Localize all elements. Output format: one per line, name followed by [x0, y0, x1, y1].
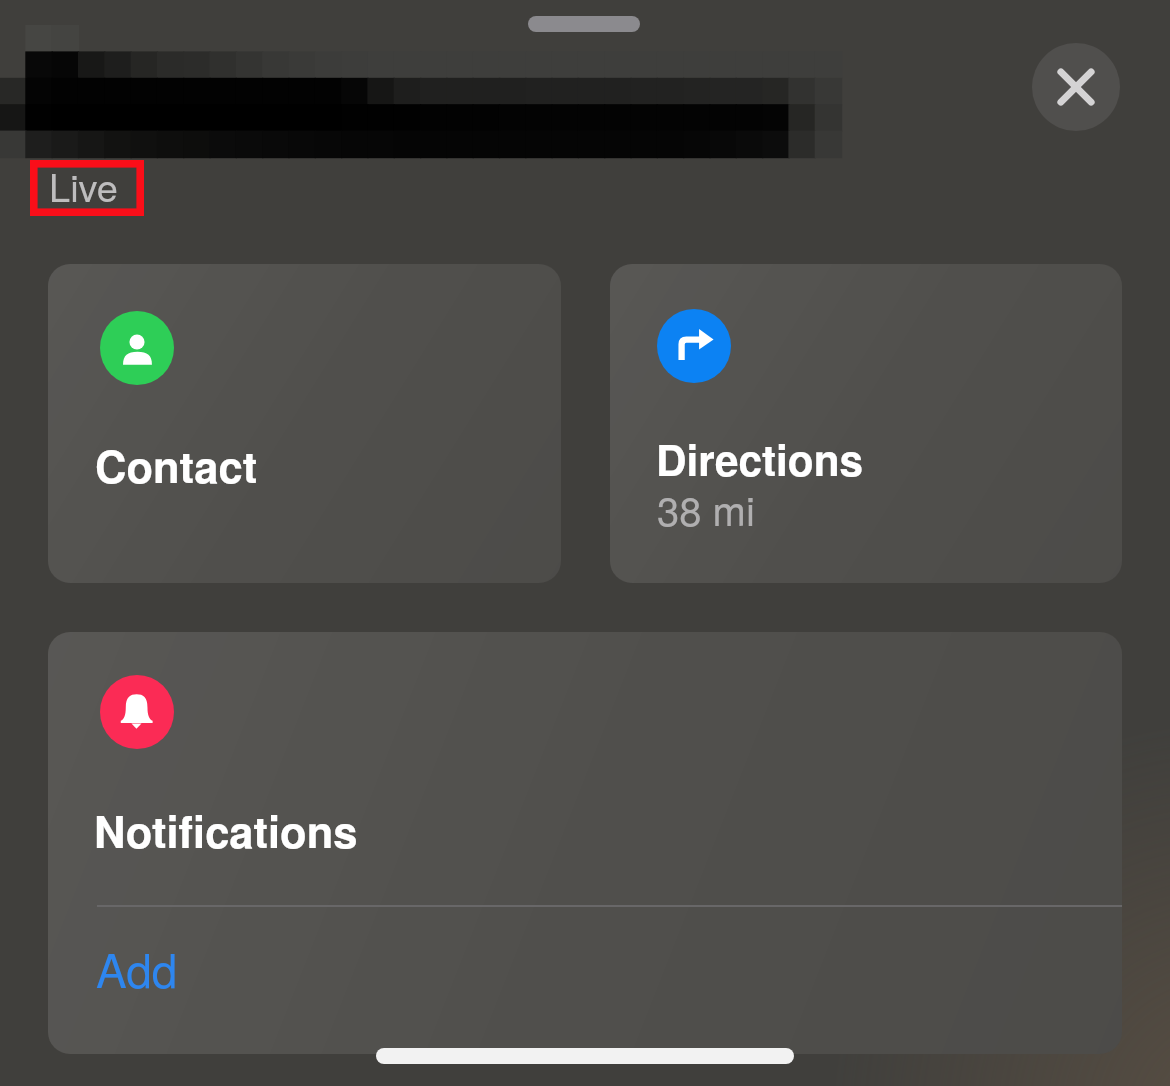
staticText: Notifications	[94, 799, 358, 861]
button[interactable]: Contact	[48, 264, 561, 583]
staticText: Contact	[95, 434, 258, 496]
button[interactable]: Add	[48, 907, 1122, 1054]
staticText: Live	[49, 158, 118, 212]
staticText: Add	[96, 935, 178, 1001]
button[interactable]: Drag handle	[528, 16, 640, 32]
staticText: Directions	[656, 428, 864, 489]
button[interactable]: Live	[30, 160, 144, 216]
staticText: 38 mi	[657, 480, 755, 537]
button[interactable]: Close	[1032, 43, 1120, 131]
button[interactable]: Directions	[610, 264, 1122, 583]
